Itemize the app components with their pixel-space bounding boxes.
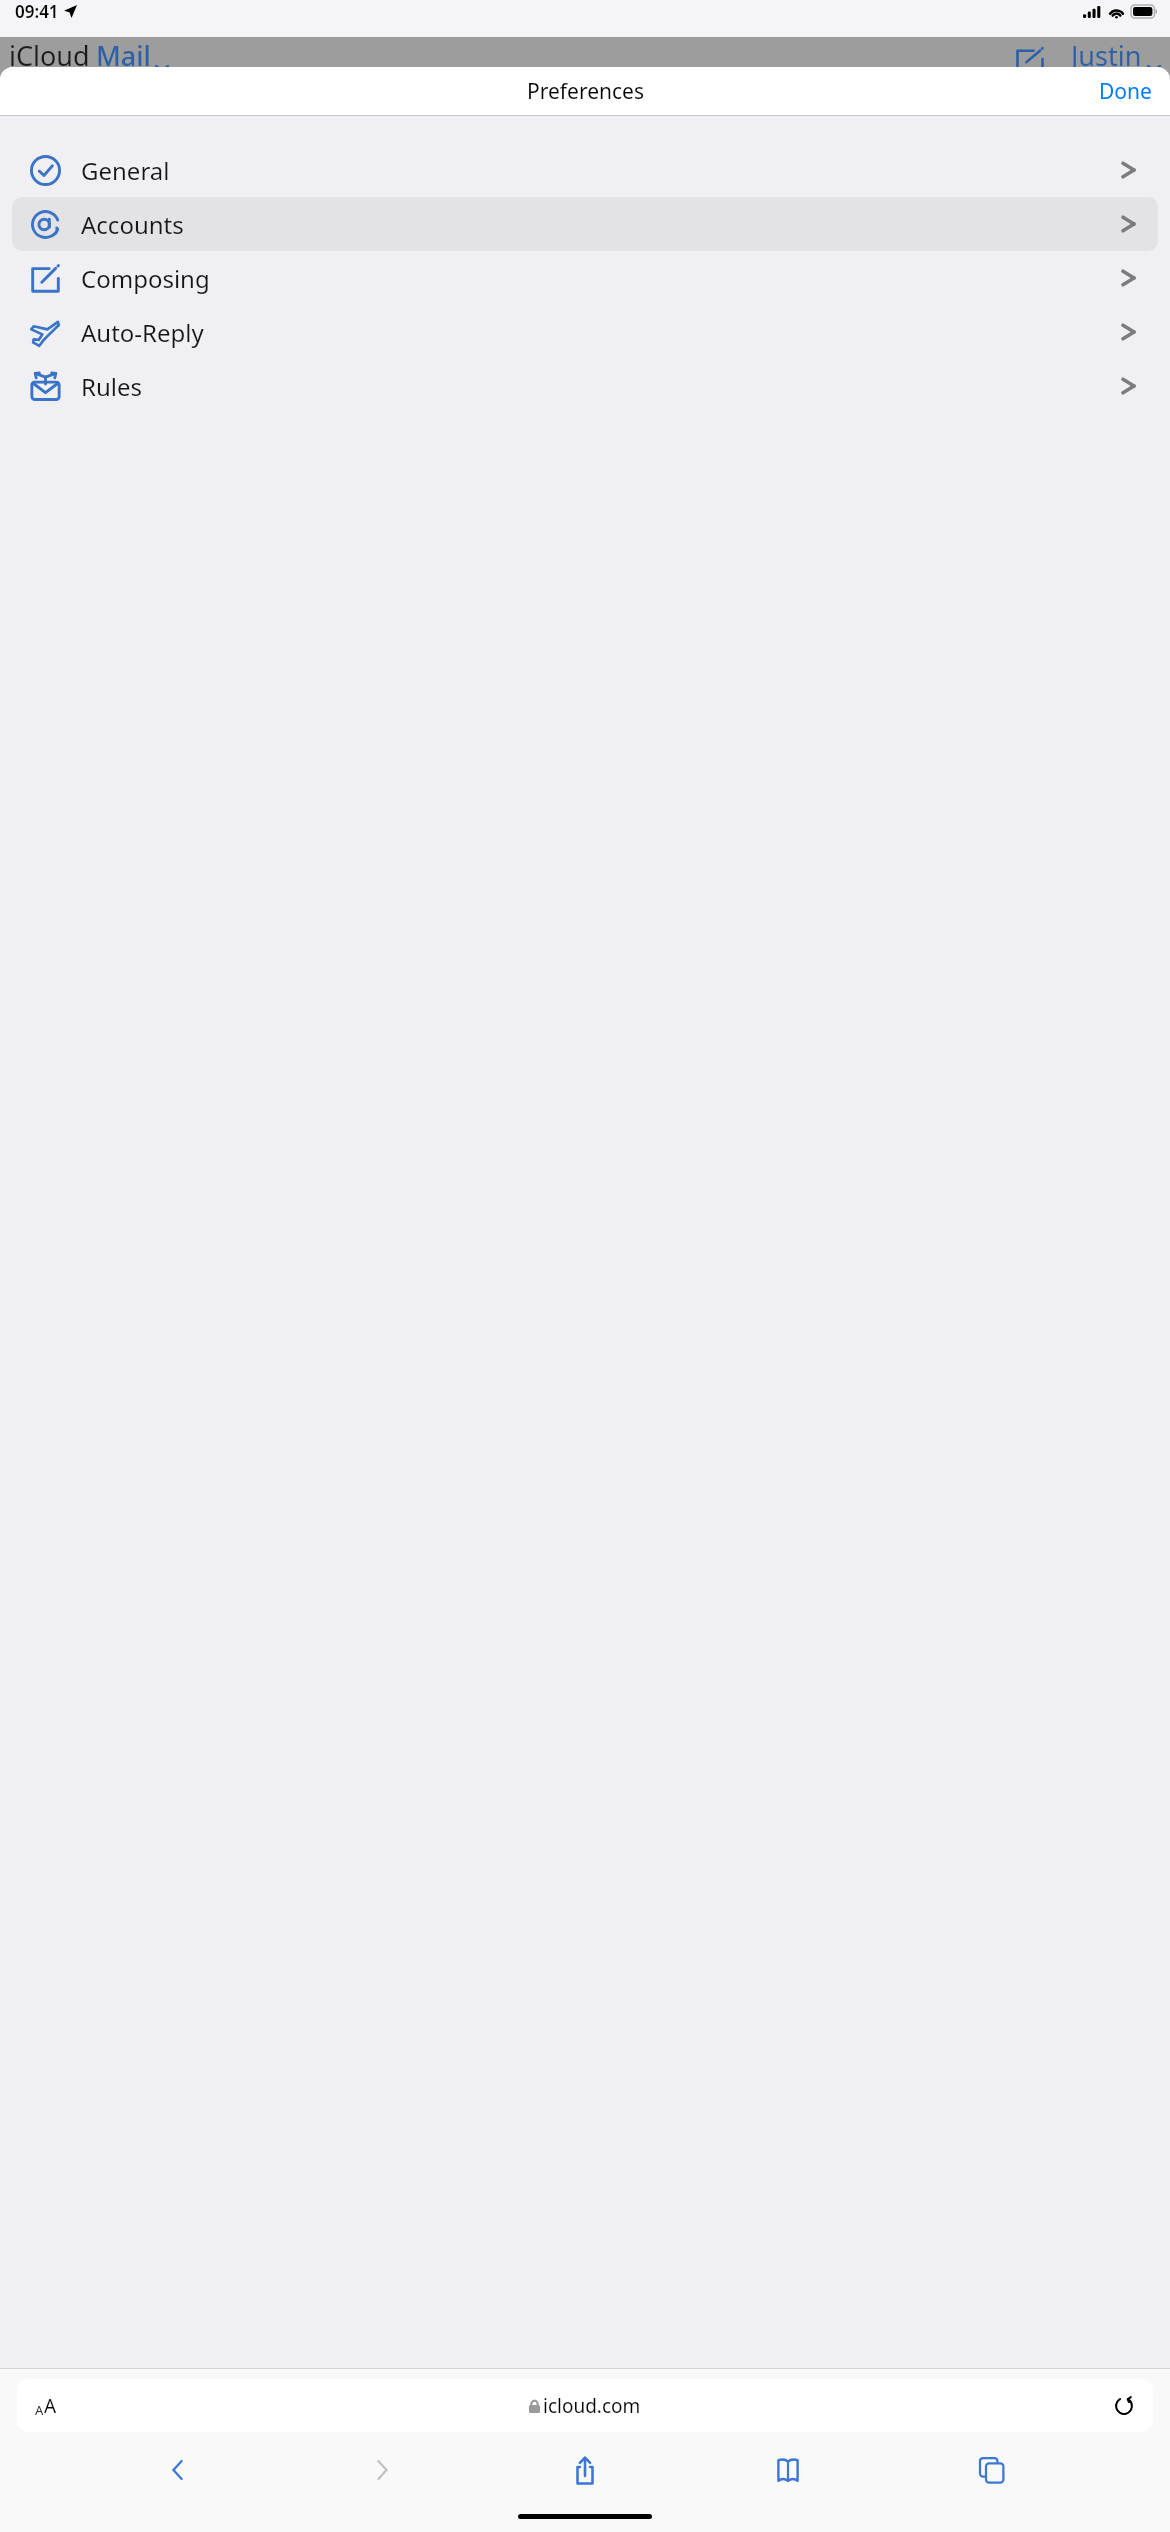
staticText: A (44, 2393, 57, 2419)
staticText: Rules (81, 370, 142, 403)
staticText: Justin (1071, 37, 1142, 74)
button[interactable]: Composing (12, 251, 1158, 305)
button[interactable]: Forward (349, 2446, 415, 2494)
button[interactable]: Back (145, 2446, 211, 2494)
button[interactable]: Share (552, 2446, 618, 2494)
staticText: Preferences (527, 77, 644, 106)
button[interactable]: General (12, 143, 1158, 197)
staticText: General (81, 154, 170, 187)
button[interactable]: Tabs (959, 2446, 1025, 2494)
staticText: Accounts (81, 208, 184, 241)
staticText: icloud.com (543, 2393, 641, 2419)
button[interactable]: Accounts (12, 197, 1158, 251)
staticText: Composing (81, 262, 210, 295)
staticText: Mail (96, 37, 151, 74)
staticText: Auto-Reply (81, 316, 204, 349)
staticText: Done (1099, 77, 1152, 106)
button[interactable]: Bookmarks (755, 2446, 821, 2494)
button[interactable]: Done (1081, 69, 1170, 114)
staticText: A (35, 2401, 44, 2419)
button[interactable]: A (17, 2379, 1153, 2432)
staticText: iCloud (9, 37, 90, 74)
button[interactable]: Rules (12, 359, 1158, 413)
button[interactable]: Auto-Reply (12, 305, 1158, 359)
staticText: 09:41 (15, 0, 59, 23)
